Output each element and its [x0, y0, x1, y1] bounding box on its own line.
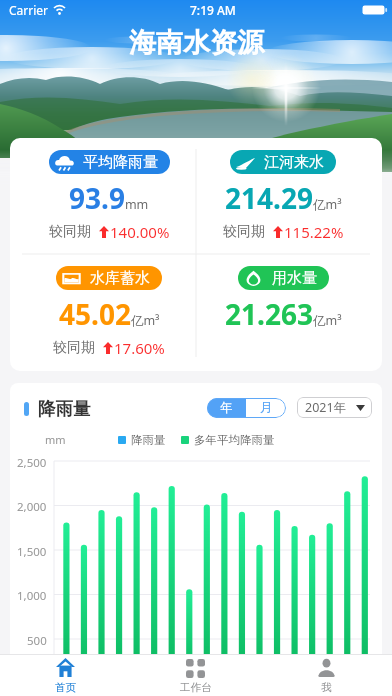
staticText: 17.60% [114, 338, 165, 358]
staticText: mm [45, 432, 66, 447]
staticText: 多年平均降雨量 [194, 433, 275, 447]
staticText: 93.9mm [69, 179, 149, 217]
other: Wi-Fi [53, 5, 66, 15]
button[interactable]: 用水量 [196, 254, 370, 371]
staticText: 21.263亿m³ [225, 295, 342, 333]
button[interactable]: 2021年 [297, 397, 372, 418]
staticText: 降雨量 [38, 398, 91, 420]
staticText: 较同期 [53, 339, 95, 357]
staticText: 降雨量 [131, 433, 166, 447]
staticText: 较同期 [223, 223, 265, 241]
button[interactable]: 工作台 [130, 655, 261, 696]
staticText: 2,500 [17, 455, 47, 471]
staticText: 我 [321, 681, 332, 694]
staticText: 平均降雨量 [83, 153, 158, 172]
staticText: 500 [27, 633, 47, 649]
button[interactable]: 水库蓄水 [22, 254, 196, 371]
button[interactable]: 年 [207, 398, 246, 418]
staticText: 较同期 [49, 223, 91, 241]
staticText: 45.02亿m³ [59, 295, 160, 333]
staticText: 2,000 [17, 499, 47, 515]
staticText: 1,500 [17, 544, 47, 560]
staticText: 工作台 [180, 681, 212, 694]
staticText: 首页 [55, 681, 76, 694]
staticText: 月 [260, 400, 273, 416]
staticText: 用水量 [272, 269, 317, 288]
button[interactable]: 我 [261, 655, 392, 696]
staticText: 水库蓄水 [90, 269, 150, 288]
staticText: 214.29亿m³ [225, 179, 342, 217]
staticText: 2021年 [305, 399, 347, 416]
staticText: 1,000 [17, 588, 47, 604]
button[interactable]: 平均降雨量 [22, 138, 196, 254]
staticText: 115.22% [284, 222, 344, 242]
button[interactable]: 江河来水 [196, 138, 370, 254]
other: Battery [360, 4, 387, 16]
staticText: 海南水资源 [129, 26, 264, 60]
button[interactable]: 月 [246, 398, 286, 418]
staticText: 年 [220, 400, 233, 416]
staticText: Carrier [9, 2, 49, 18]
staticText: 140.00% [110, 222, 170, 242]
button[interactable]: 首页 [0, 655, 130, 696]
staticText: 江河来水 [264, 153, 324, 172]
staticText: 7:19 AM [190, 2, 236, 18]
